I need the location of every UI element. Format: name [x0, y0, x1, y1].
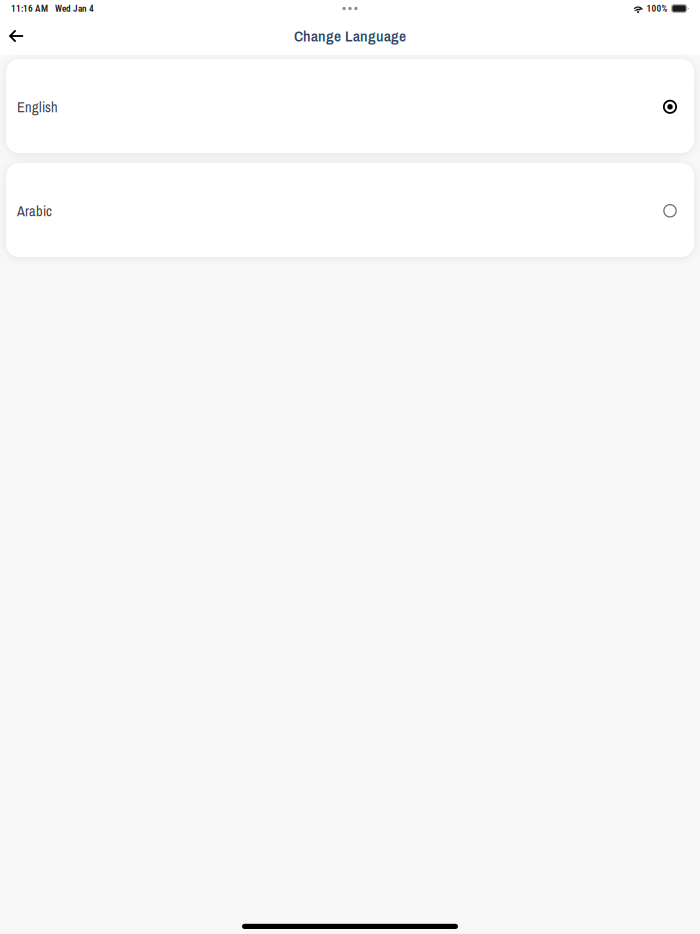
- staticText: Change Language: [294, 26, 406, 46]
- button[interactable]: Arabic: [6, 163, 694, 257]
- staticText: English: [17, 97, 58, 117]
- button[interactable]: English: [6, 59, 694, 153]
- staticText: 100%: [646, 3, 667, 14]
- staticText: Wed Jan 4: [55, 3, 94, 14]
- staticText: Arabic: [17, 201, 52, 221]
- button[interactable]: Back: [0, 19, 33, 52]
- staticText: 11:16 AM: [11, 3, 48, 14]
